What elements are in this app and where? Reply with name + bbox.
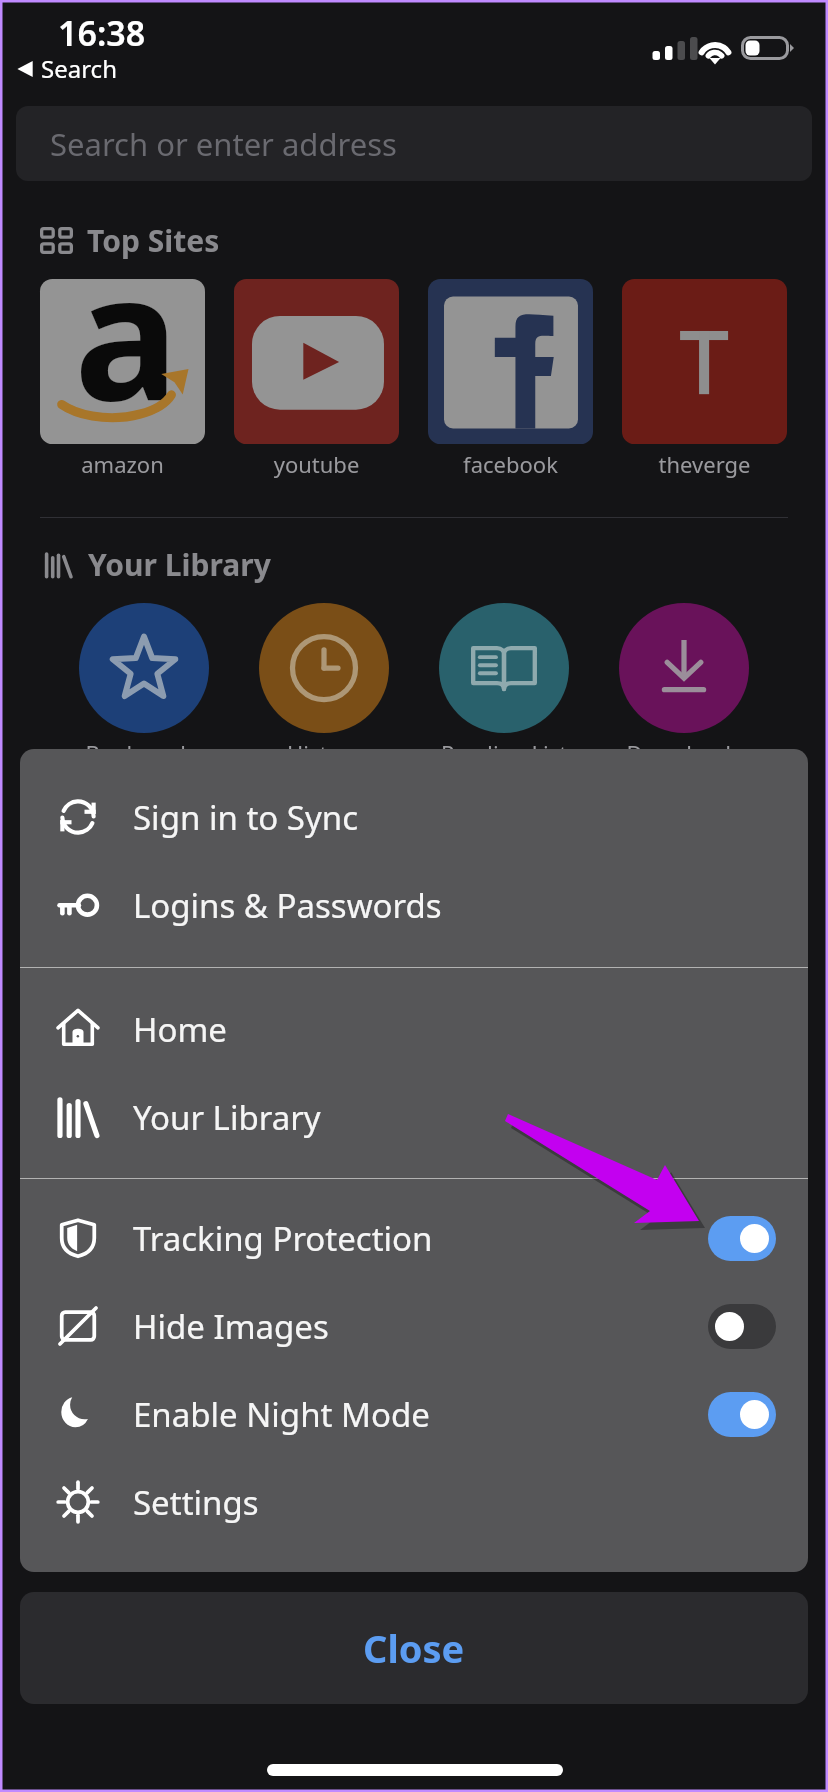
staticText: Sign in to Sync [133, 795, 359, 840]
staticText: Reading List [372, 738, 636, 768]
staticText: Settings [133, 1480, 259, 1525]
staticText: Search [41, 52, 117, 85]
staticText: facebook [428, 449, 593, 479]
staticText: a [74, 213, 179, 451]
button[interactable]: Search [16, 52, 117, 85]
staticText: 16:38 [58, 10, 146, 56]
button[interactable]: Sign in to Sync [20, 773, 808, 861]
button[interactable]: Tracking Protection [708, 1216, 776, 1261]
button[interactable]: Reading List [439, 603, 569, 733]
button[interactable]: Close [20, 1592, 808, 1704]
button[interactable]: Enable Night Mode [20, 1370, 808, 1458]
button[interactable]: Search or enter address [16, 106, 812, 181]
button[interactable]: Tracking Protection [20, 1194, 808, 1282]
staticText: Hide Images [133, 1304, 329, 1349]
staticText: Downloads [552, 738, 816, 768]
staticText: Close [363, 1622, 465, 1674]
staticText: Your Library [133, 1095, 321, 1140]
button[interactable]: Home [20, 985, 808, 1073]
staticText: amazon [40, 449, 205, 479]
button[interactable]: youtube [234, 279, 400, 479]
button[interactable]: Hide Images [20, 1282, 808, 1370]
button[interactable]: Settings [20, 1458, 808, 1546]
button[interactable]: Your Library [20, 1073, 808, 1161]
button[interactable]: Hide Images [708, 1304, 776, 1349]
staticText: Top Sites [87, 220, 220, 261]
button[interactable]: Downloads [619, 603, 749, 733]
staticText: Logins & Passwords [133, 883, 442, 928]
staticText: Tracking Protection [133, 1216, 433, 1261]
button[interactable]: History [259, 603, 389, 733]
staticText: youtube [234, 449, 399, 479]
button[interactable]: Logins & Passwords [20, 861, 808, 949]
button[interactable]: theverge [622, 279, 788, 479]
staticText: Enable Night Mode [133, 1392, 430, 1437]
staticText: Search or enter address [50, 123, 397, 165]
button[interactable]: facebook [428, 279, 594, 479]
staticText: theverge [622, 449, 787, 479]
button[interactable]: Bookmarks [79, 603, 209, 733]
button[interactable]: a [40, 279, 206, 479]
staticText: Bookmarks [12, 738, 276, 768]
staticText: Your Library [88, 544, 271, 585]
staticText: History [192, 738, 456, 768]
button[interactable]: Enable Night Mode [708, 1392, 776, 1437]
staticText: Home [133, 1007, 227, 1052]
